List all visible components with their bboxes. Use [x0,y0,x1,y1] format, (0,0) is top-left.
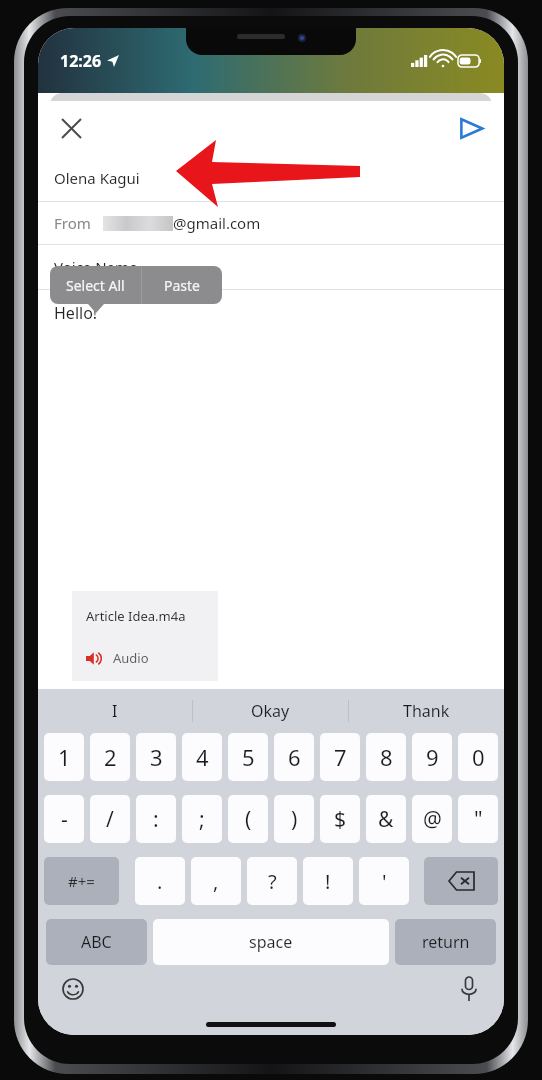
staticText: 0 [472,742,485,772]
button[interactable]: ) [274,795,314,843]
staticText: 1 [58,742,71,772]
button[interactable]: Close [51,108,91,148]
staticText: From [54,213,91,233]
staticText: #+= [68,871,95,891]
button[interactable]: Okay [193,689,348,733]
staticText: I [112,700,118,722]
button[interactable]: Olena Kagui [38,155,504,201]
staticText: ) [291,805,298,834]
button[interactable]: 3 [136,733,176,781]
button[interactable]: 2 [90,733,130,781]
button[interactable]: 0 [458,733,498,781]
button[interactable]: 6 [274,733,314,781]
staticText: Okay [251,700,290,722]
button[interactable]: #+= [44,857,119,905]
button[interactable]: - [44,795,84,843]
button[interactable]: Paste [142,266,222,304]
button[interactable]: Voice Nemo [38,245,504,289]
staticText: space [249,931,293,953]
staticText: Paste [164,276,200,295]
button[interactable]: 4 [182,733,222,781]
button[interactable]: ( [228,795,268,843]
button[interactable]: $ [320,795,360,843]
button[interactable]: ? [247,857,297,905]
staticText: : [153,805,159,834]
button[interactable]: 7 [320,733,360,781]
button[interactable]: 9 [412,733,452,781]
staticText: ; [199,805,205,834]
staticText: Audio [113,649,149,667]
staticText: ABC [81,931,112,953]
staticText: $ [334,805,347,834]
button[interactable]: Backspace [424,857,498,905]
staticText: Article Idea.m4a [86,607,186,625]
staticText: Thank [403,700,450,722]
button[interactable]: ' [359,857,409,905]
staticText: 2 [104,742,117,772]
button[interactable]: @ [412,795,452,843]
staticText: 5 [242,742,255,772]
button[interactable]: ; [182,795,222,843]
button[interactable]: ABC [46,919,147,965]
button[interactable]: & [366,795,406,843]
button[interactable]: Emoji [56,972,90,1006]
staticText: 8 [380,742,393,772]
staticText: return [422,931,470,953]
staticText: 7 [334,742,347,772]
staticText: ? [268,868,277,895]
staticText: - [61,805,68,834]
button[interactable]: Select All [50,266,141,304]
staticText: " [474,805,483,834]
staticText: ' [382,868,387,895]
button[interactable]: Article Idea.m4a [72,591,218,681]
staticText: . [157,868,163,895]
staticText: ! [325,868,331,895]
staticText: ( [245,805,252,834]
staticText: 9 [426,742,439,772]
button[interactable]: " [458,795,498,843]
staticText: Voice Nemo [54,257,139,277]
button[interactable]: Thank [349,689,504,733]
staticText: Olena Kagui [54,168,140,188]
button[interactable]: : [136,795,176,843]
button[interactable]: Send [451,108,491,148]
staticText: 4 [196,742,209,772]
staticText: Select All [66,276,125,295]
staticText: / [106,805,114,834]
staticText: & [378,805,394,834]
staticText: @ [423,805,442,834]
button[interactable]: ! [303,857,353,905]
staticText: , [213,868,219,895]
button[interactable]: . [135,857,185,905]
button[interactable]: , [191,857,241,905]
button[interactable]: space [153,919,389,965]
staticText: 12:26 [60,50,102,72]
button[interactable]: 1 [44,733,84,781]
button[interactable]: 5 [228,733,268,781]
staticText: Hello! [54,302,98,324]
button[interactable]: From [38,202,504,244]
button[interactable]: 8 [366,733,406,781]
button[interactable]: return [395,919,496,965]
staticText: @gmail.com [173,213,261,233]
staticText: 6 [288,742,301,772]
button[interactable]: / [90,795,130,843]
button[interactable]: Dictation [452,972,486,1006]
button[interactable]: I [38,689,192,733]
staticText: 3 [150,742,163,772]
